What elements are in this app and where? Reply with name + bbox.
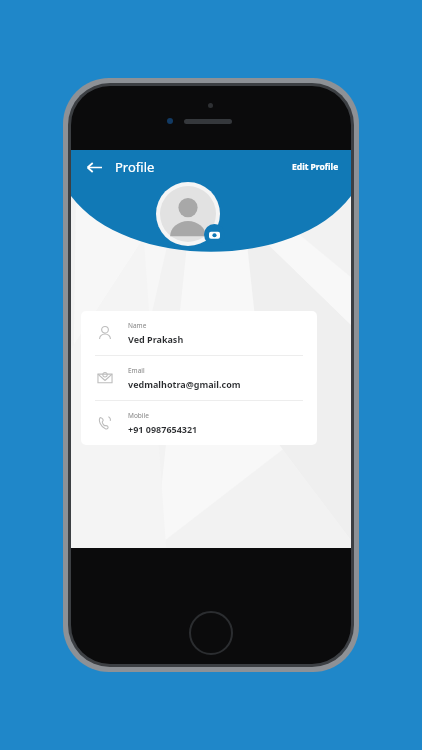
- staticText: Profile: [115, 158, 155, 176]
- button[interactable]: Change photo: [204, 224, 225, 245]
- staticText: Name: [128, 321, 147, 330]
- button[interactable]: Back: [81, 154, 107, 180]
- staticText: +91 0987654321: [128, 423, 198, 435]
- staticText: vedmalhotra@gmail.com: [128, 378, 241, 390]
- button[interactable]: Edit Profile: [290, 157, 341, 177]
- staticText: Mobile: [128, 411, 149, 420]
- staticText: Edit Profile: [292, 161, 339, 173]
- staticText: Email: [128, 366, 145, 375]
- button[interactable]: Name: [95, 311, 303, 355]
- button[interactable]: Email: [95, 356, 303, 400]
- button[interactable]: Mobile: [95, 401, 303, 445]
- staticText: Ved Prakash: [128, 333, 184, 345]
